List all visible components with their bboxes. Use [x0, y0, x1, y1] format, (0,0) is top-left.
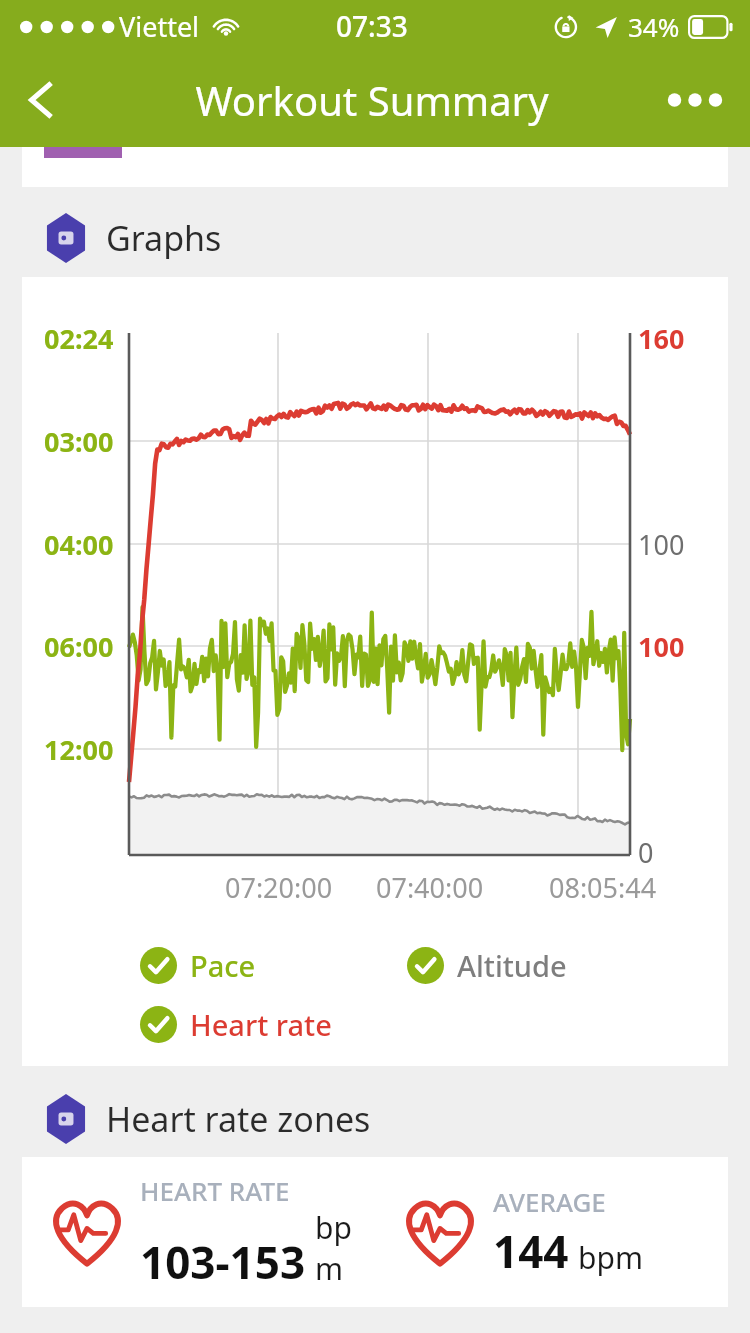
staticText: 100	[638, 526, 685, 563]
button[interactable]	[22, 147, 728, 187]
button[interactable]: Back	[0, 58, 84, 142]
staticText: 02:24	[44, 320, 114, 357]
staticText: Altitude	[457, 946, 567, 985]
staticText: 160	[638, 320, 685, 357]
staticText: Heart rate zones	[106, 1096, 371, 1142]
staticText: Workout Summary	[195, 73, 549, 127]
staticText: 04:00	[44, 526, 114, 563]
staticText: 06:00	[44, 628, 114, 665]
staticText: Graphs	[106, 215, 222, 261]
staticText: 12:00	[44, 731, 114, 768]
staticText: 34%	[628, 9, 680, 44]
button[interactable]: Altitude	[407, 946, 567, 985]
button[interactable]: Heart rate	[140, 1005, 332, 1044]
staticText: 07:20:00	[225, 869, 333, 906]
staticText: 144	[493, 1221, 569, 1281]
staticText: 07:40:00	[376, 869, 484, 906]
staticText: Viettel	[119, 8, 200, 45]
staticText: 0	[638, 834, 654, 871]
staticText: 03:00	[44, 423, 114, 460]
staticText: HEART RATE	[140, 1173, 290, 1208]
staticText: bpm	[578, 1237, 643, 1278]
button[interactable]: Pace	[140, 946, 256, 985]
button[interactable]: More options	[640, 55, 750, 145]
staticText: Pace	[190, 946, 256, 985]
button[interactable]: 02:24	[22, 277, 728, 1066]
staticText: 07:33	[336, 7, 408, 45]
staticText: 103-153	[140, 1232, 306, 1292]
staticText: bpm	[315, 1207, 375, 1289]
staticText: 100	[638, 628, 685, 665]
staticText: 08:05:44	[549, 869, 657, 906]
button[interactable]: HEART RATE	[22, 1157, 728, 1307]
staticText: AVERAGE	[493, 1184, 606, 1219]
staticText: Heart rate	[190, 1005, 332, 1044]
